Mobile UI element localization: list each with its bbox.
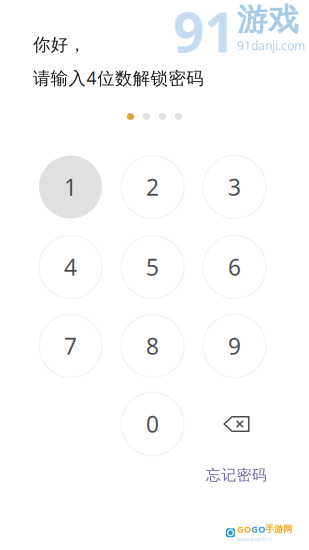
staticText: 忘记密码 xyxy=(206,466,267,484)
staticText: 3 xyxy=(228,172,241,202)
staticText: GO xyxy=(251,523,265,535)
button[interactable]: 6 xyxy=(203,235,266,298)
staticText: 9 xyxy=(228,331,241,361)
staticText: 你好， xyxy=(33,34,86,55)
button[interactable]: 7 xyxy=(39,314,102,377)
staticText: www.gogo9.cn xyxy=(237,535,272,542)
button[interactable]: 9 xyxy=(203,314,266,377)
button[interactable]: 4 xyxy=(39,235,102,298)
button[interactable]: 3 xyxy=(203,155,266,218)
staticText: 6 xyxy=(228,252,241,282)
staticText: 91 xyxy=(173,0,235,68)
staticText: 游戏 xyxy=(237,1,299,39)
button[interactable]: 0 xyxy=(121,392,184,455)
staticText: 0 xyxy=(146,409,159,439)
button[interactable]: 8 xyxy=(121,314,184,377)
staticText: 91danji.com xyxy=(237,38,305,54)
button[interactable]: 1 xyxy=(39,155,102,218)
staticText: 请输入4位数解锁密码 xyxy=(33,66,203,89)
staticText: 手游网 xyxy=(265,523,292,535)
staticText: 8 xyxy=(146,331,159,361)
staticText: 4 xyxy=(64,252,77,282)
staticText: 2 xyxy=(146,172,159,202)
staticText: 1 xyxy=(64,172,77,202)
button[interactable]: Delete xyxy=(203,392,266,455)
button[interactable]: 2 xyxy=(121,155,184,218)
button[interactable]: 5 xyxy=(121,235,184,298)
staticText: GO xyxy=(237,523,251,535)
button[interactable]: 忘记密码 xyxy=(206,466,267,484)
staticText: 5 xyxy=(146,252,159,282)
staticText: 7 xyxy=(64,331,77,361)
